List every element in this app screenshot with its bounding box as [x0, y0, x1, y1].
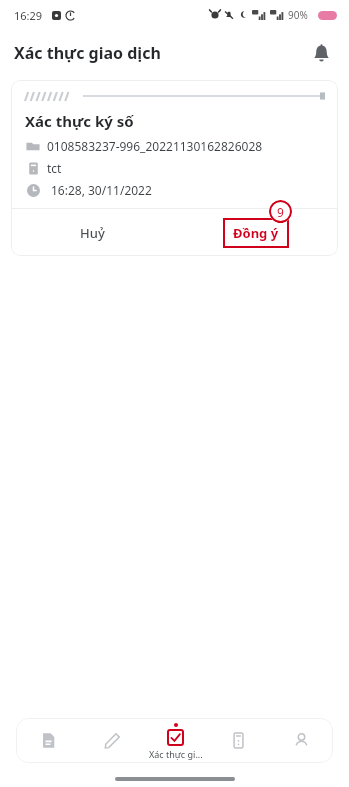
button[interactable]: Đồng ý	[223, 218, 289, 248]
staticText: 16:28, 30/11/2022	[51, 182, 152, 198]
staticText: tct	[47, 160, 62, 176]
staticText: Xác thực gi...	[149, 748, 203, 760]
staticText: 0108583237-996_20221130162826028	[47, 138, 263, 154]
staticText: 90%	[288, 8, 308, 22]
staticText: Xác thực ký số	[25, 111, 134, 131]
button[interactable]: Sign	[80, 718, 144, 763]
button[interactable]: Account	[270, 718, 333, 763]
button[interactable]: Xác thực gi...	[144, 718, 207, 763]
button[interactable]: Notifications	[305, 37, 337, 69]
button[interactable]: Documents	[16, 718, 80, 763]
staticText: 9	[277, 204, 284, 220]
button[interactable]: Huỷ	[11, 209, 174, 256]
staticText: Đồng ý	[233, 224, 279, 242]
staticText: Huỷ	[80, 224, 105, 242]
staticText: 16:29	[14, 8, 43, 23]
staticText: Xác thực giao dịch	[14, 42, 161, 64]
button[interactable]: Xác thực ký số	[11, 80, 338, 256]
button[interactable]: Devices	[207, 718, 270, 763]
